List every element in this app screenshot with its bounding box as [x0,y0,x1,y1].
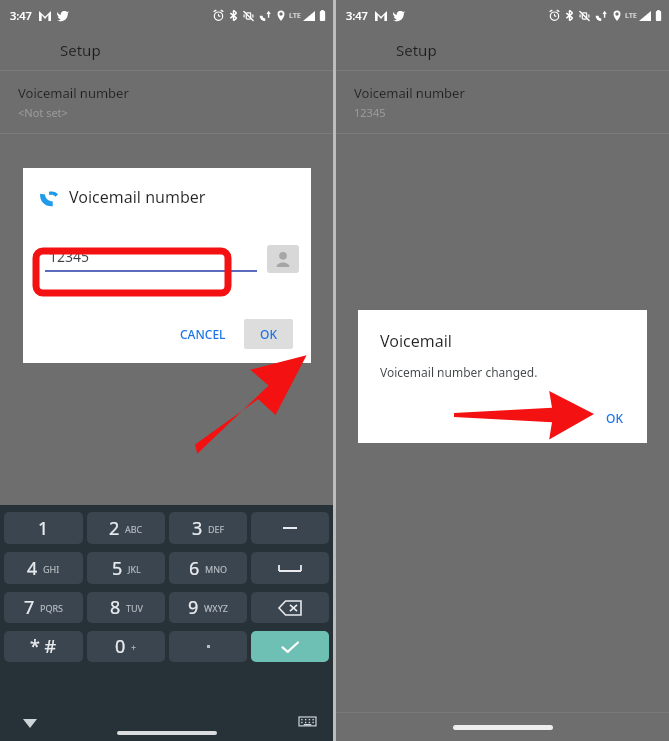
button[interactable]: Hide keyboard [20,713,40,733]
staticText: OK [260,326,277,342]
staticText: DEF [208,523,225,535]
staticText: 12345 [354,105,386,120]
staticText: PQRS [40,602,64,614]
button[interactable]: Change keyboard [297,713,317,733]
staticText: 2 [109,516,120,541]
button[interactable]: 2 [87,512,165,544]
staticText: 3 [192,516,203,541]
staticText: WXYZ [204,602,228,614]
button[interactable]: 1 [4,512,83,544]
button[interactable]: SPACE [251,552,329,584]
button[interactable]: 0 [87,631,165,662]
staticText: Voicemail number [18,84,129,102]
button[interactable]: DASH [251,512,329,544]
staticText: ABC [125,523,143,535]
button[interactable]: Voicemail number [336,71,669,133]
button[interactable]: BACKSPACE [251,592,329,623]
staticText: MNO [205,563,228,575]
staticText: 6 [189,556,200,581]
staticText: 1 [38,516,49,541]
staticText: GHI [43,563,60,575]
button[interactable]: ENTER [251,631,329,662]
staticText: <Not set> [18,105,68,120]
button[interactable]: DOT [169,631,247,662]
staticText: CANCEL [180,326,226,342]
staticText: * # [30,634,57,659]
button[interactable]: 3 [169,512,247,544]
button[interactable]: Pick contact [267,245,299,273]
staticText: 5 [112,556,123,581]
staticText: Voicemail number [69,186,206,208]
staticText: 3:47 [346,8,368,23]
staticText: Setup [60,40,101,60]
button[interactable]: * # [4,631,83,662]
button[interactable]: 9 [169,592,247,623]
button[interactable]: 8 [87,592,165,623]
staticText: 12345 [49,247,90,266]
staticText: Voicemail [380,330,452,352]
staticText: OK [606,410,623,426]
staticText: JKL [128,563,141,575]
staticText: 7 [24,595,35,620]
button[interactable]: CANCEL [170,319,236,349]
staticText: LTE [289,11,301,21]
staticText: 3:47 [10,8,32,23]
staticText: + [131,641,137,653]
staticText: 0 [115,634,126,659]
button[interactable]: 5 [87,552,165,584]
button[interactable]: 4 [4,552,83,584]
staticText: Setup [396,40,437,60]
button[interactable]: OK [594,403,635,433]
button[interactable]: 12345 [45,247,257,272]
staticText: Voicemail number changed. [380,364,538,380]
button[interactable]: 6 [169,552,247,584]
staticText: TUV [126,602,143,614]
staticText: 9 [188,595,199,620]
button[interactable]: Voicemail number [0,71,333,133]
button[interactable]: 7 [4,592,83,623]
button[interactable]: OK [244,319,293,349]
staticText: Voicemail number [354,84,465,102]
staticText: 8 [110,595,121,620]
staticText: 4 [27,556,38,581]
staticText: LTE [625,11,637,21]
